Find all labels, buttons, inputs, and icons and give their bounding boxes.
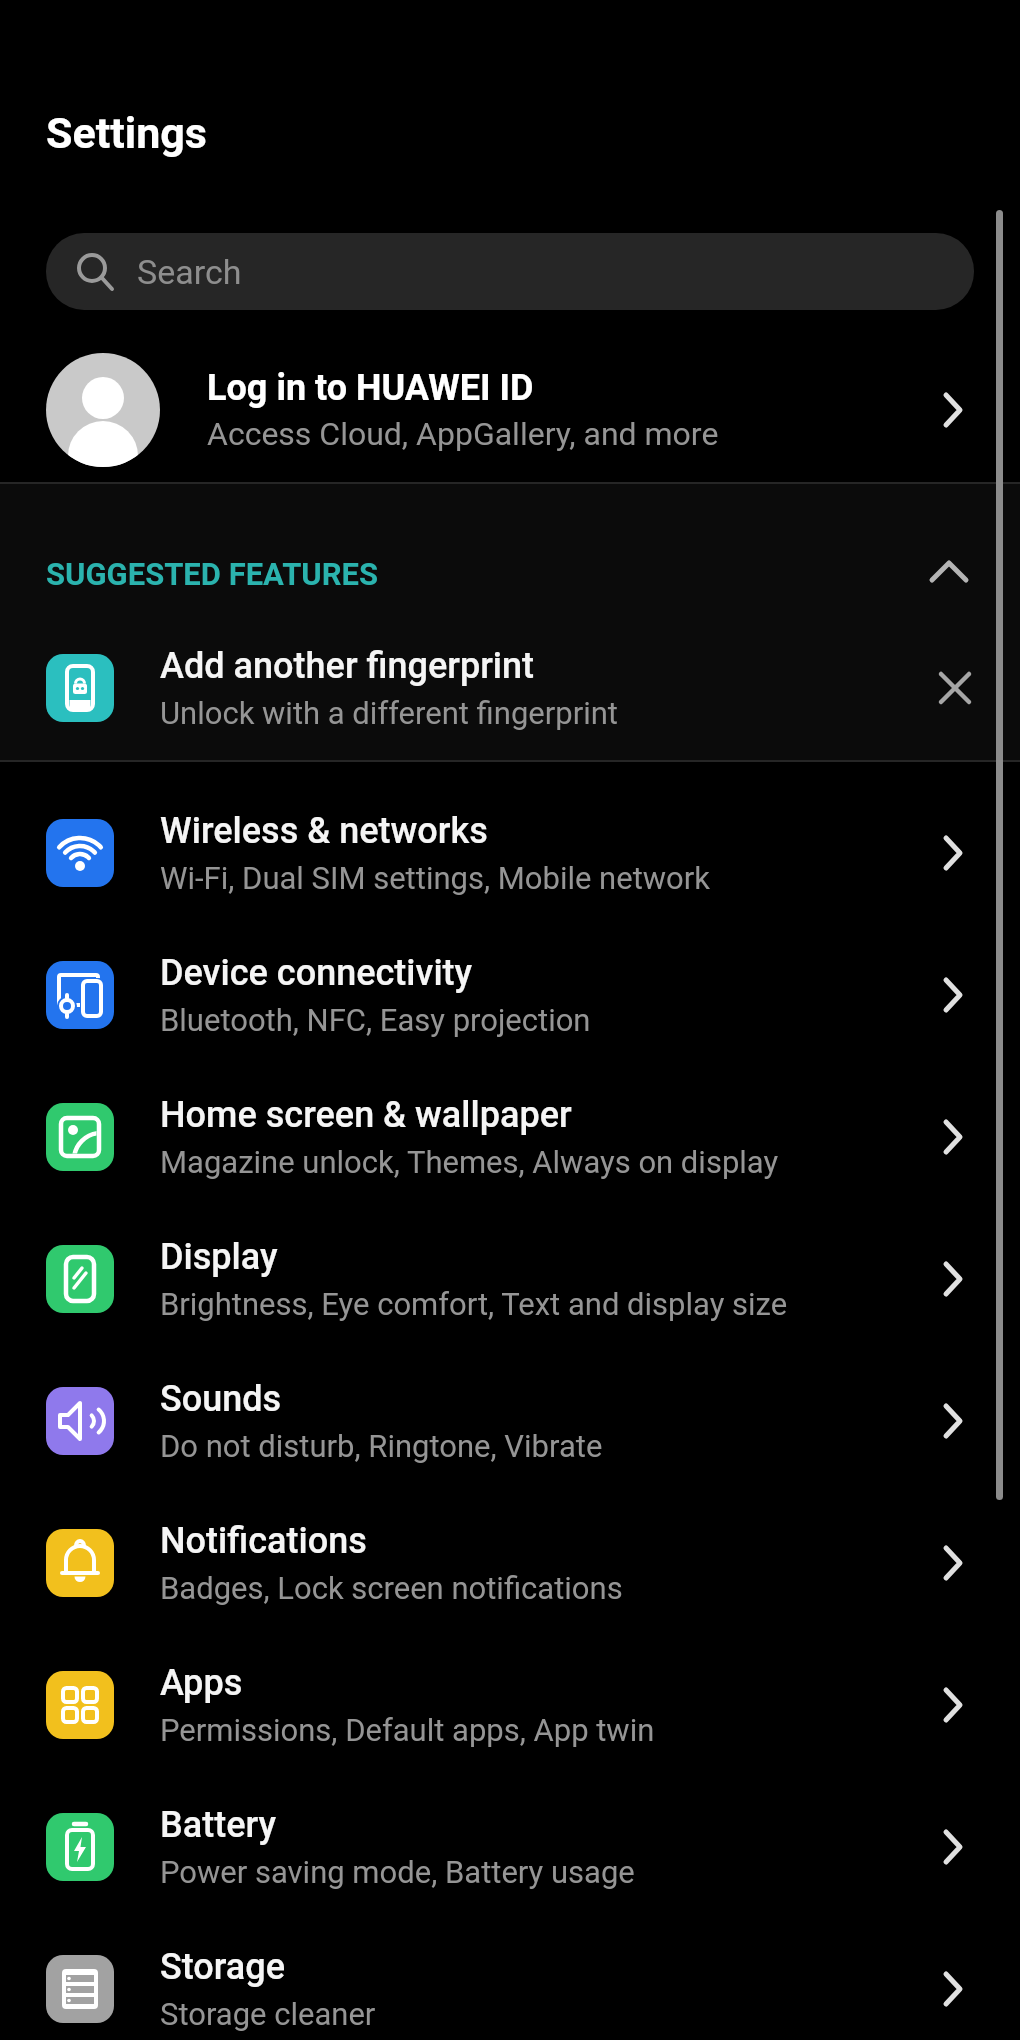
button[interactable]: Display [0,1208,1020,1350]
staticText: Device connectivity [160,952,473,994]
button[interactable]: Apps [0,1634,1020,1776]
staticText: SUGGESTED FEATURES [46,556,379,592]
button[interactable]: Storage [0,1918,1020,2040]
button[interactable]: Home screen & wallpaper [0,1066,1020,1208]
staticText: Apps [160,1662,243,1704]
staticText: Magazine unlock, Themes, Always on displ… [160,1144,779,1180]
button[interactable]: Battery [0,1776,1020,1918]
staticText: Settings [46,108,207,158]
staticText: Do not disturb, Ringtone, Vibrate [160,1428,603,1464]
staticText: Log in to HUAWEI ID [207,367,534,409]
button[interactable]: Notifications [0,1492,1020,1634]
button[interactable]: Add another fingerprint [0,618,1020,758]
staticText: Badges, Lock screen notifications [160,1570,623,1606]
staticText: Sounds [160,1378,282,1420]
staticText: Power saving mode, Battery usage [160,1854,635,1890]
staticText: Bluetooth, NFC, Easy projection [160,1002,591,1038]
staticText: Battery [160,1804,277,1846]
staticText: Notifications [160,1520,367,1562]
staticText: Display [160,1236,278,1278]
staticText: Wireless & networks [160,810,488,852]
staticText: Wi-Fi, Dual SIM settings, Mobile network [160,860,711,896]
button[interactable]: Search [46,233,974,310]
staticText: Unlock with a different fingerprint [160,695,618,731]
staticText: Storage cleaner [160,1996,376,2032]
staticText: Search [137,252,242,292]
staticText: Add another fingerprint [160,645,535,687]
button[interactable]: Sounds [0,1350,1020,1492]
button[interactable]: Log in to HUAWEI ID [0,340,1020,480]
staticText: Brightness, Eye comfort, Text and displa… [160,1286,788,1322]
staticText: Home screen & wallpaper [160,1094,572,1136]
button[interactable]: SUGGESTED FEATURES [0,540,1020,608]
button[interactable]: Device connectivity [0,924,1020,1066]
staticText: Access Cloud, AppGallery, and more [207,415,719,453]
button[interactable]: Wireless & networks [0,782,1020,924]
staticText: Permissions, Default apps, App twin [160,1712,655,1748]
staticText: Storage [160,1946,286,1988]
